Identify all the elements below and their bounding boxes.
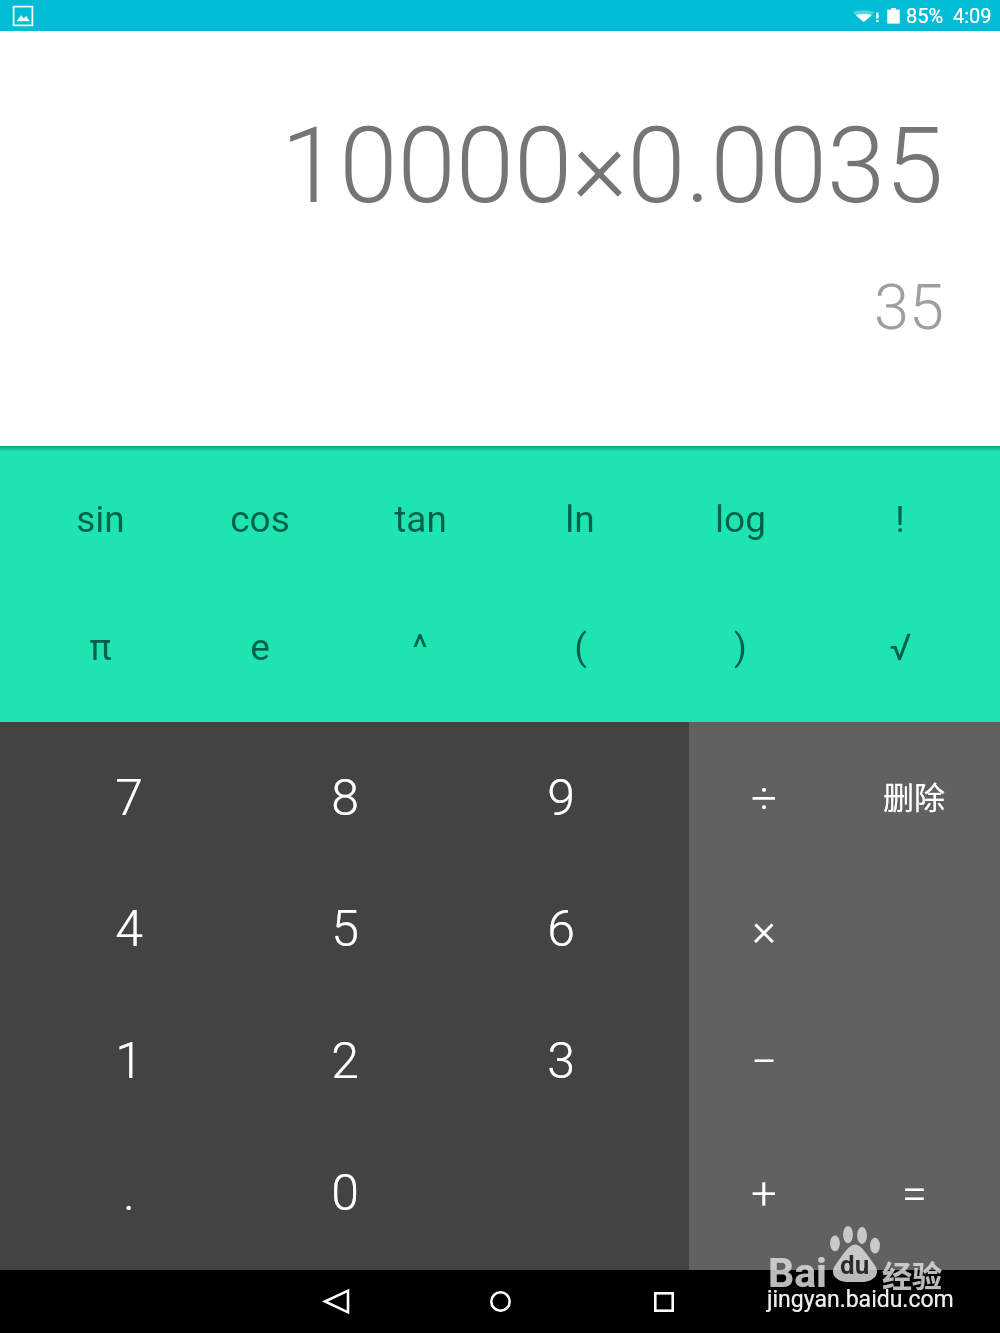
- button[interactable]: +: [689, 1127, 839, 1259]
- staticText: 2: [331, 1032, 359, 1091]
- button[interactable]: 4: [20, 864, 237, 995]
- staticText: ÷: [751, 772, 777, 825]
- staticText: −: [751, 1035, 777, 1088]
- staticText: ^: [412, 626, 428, 669]
- staticText: 经验: [882, 1252, 942, 1295]
- button[interactable]: 0: [237, 1127, 453, 1259]
- button[interactable]: (: [500, 583, 660, 711]
- staticText: =: [902, 1167, 927, 1220]
- button[interactable]: Home: [463, 1270, 537, 1333]
- button[interactable]: tan: [340, 456, 500, 583]
- button[interactable]: 9: [453, 733, 669, 864]
- staticText: 7: [115, 769, 143, 828]
- button[interactable]: !: [820, 456, 980, 583]
- button[interactable]: sin: [20, 456, 180, 583]
- button[interactable]: cos: [180, 456, 340, 583]
- staticText: 6: [547, 900, 575, 959]
- button[interactable]: ×: [689, 864, 839, 995]
- button[interactable]: 7: [20, 733, 237, 864]
- staticText: 0: [331, 1164, 359, 1223]
- other: Screenshot saved: [13, 6, 33, 26]
- button[interactable]: 删除: [839, 733, 989, 864]
- button[interactable]: Back: [299, 1270, 373, 1333]
- staticText: 4:09: [953, 4, 992, 27]
- staticText: √: [889, 626, 912, 669]
- staticText: log: [715, 498, 766, 541]
- staticText: (: [574, 626, 587, 669]
- staticText: 85%: [906, 4, 944, 27]
- staticText: π: [89, 626, 112, 669]
- button[interactable]: ln: [500, 456, 660, 583]
- button[interactable]: π: [20, 583, 180, 711]
- staticText: 5: [331, 900, 359, 959]
- button[interactable]: ): [660, 583, 820, 711]
- staticText: sin: [76, 498, 125, 541]
- staticText: tan: [394, 498, 447, 541]
- button[interactable]: Recent apps: [627, 1270, 701, 1333]
- staticText: 10000×0.0035: [281, 105, 944, 228]
- staticText: 删除: [883, 773, 945, 818]
- button[interactable]: ÷: [689, 733, 839, 864]
- staticText: 4: [115, 900, 143, 959]
- staticText: 3: [547, 1032, 575, 1091]
- button[interactable]: e: [180, 583, 340, 711]
- staticText: Bai: [768, 1249, 827, 1297]
- staticText: ln: [565, 498, 595, 541]
- staticText: .: [123, 1164, 135, 1223]
- staticText: cos: [230, 498, 290, 541]
- staticText: jingyan.baidu.com: [767, 1286, 954, 1313]
- staticText: du: [840, 1250, 870, 1280]
- button[interactable]: 2: [237, 995, 453, 1127]
- button[interactable]: 3: [453, 995, 669, 1127]
- staticText: 1: [115, 1032, 143, 1091]
- button[interactable]: 6: [453, 864, 669, 995]
- button[interactable]: 5: [237, 864, 453, 995]
- staticText: ): [734, 626, 747, 669]
- staticText: 9: [547, 769, 575, 828]
- staticText: 8: [331, 769, 359, 828]
- button[interactable]: =: [839, 1127, 989, 1259]
- staticText: e: [250, 626, 270, 669]
- button[interactable]: 1: [20, 995, 237, 1127]
- button[interactable]: 8: [237, 733, 453, 864]
- staticText: 35: [874, 271, 944, 345]
- staticText: ×: [752, 903, 776, 956]
- staticText: +: [751, 1167, 777, 1220]
- button[interactable]: −: [689, 995, 839, 1127]
- staticText: !: [895, 498, 905, 541]
- button[interactable]: √: [820, 583, 980, 711]
- button[interactable]: log: [660, 456, 820, 583]
- button[interactable]: ^: [340, 583, 500, 711]
- button[interactable]: .: [20, 1127, 237, 1259]
